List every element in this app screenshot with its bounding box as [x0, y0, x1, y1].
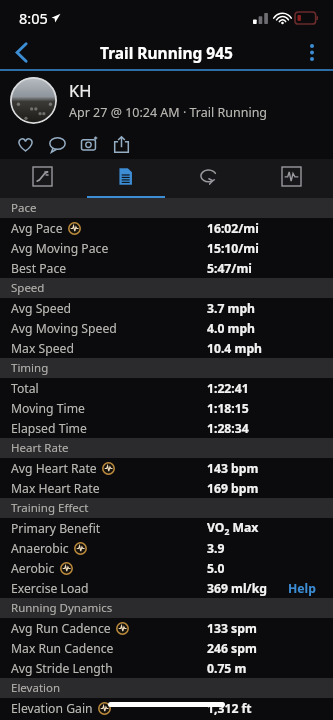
- button[interactable]: Back: [0, 35, 42, 69]
- staticText: Anaerobic: [11, 540, 69, 557]
- button[interactable]: Avg Run Cadence: [0, 618, 333, 638]
- button[interactable]: Best Pace: [0, 258, 333, 278]
- staticText: VO2 Max: [207, 519, 259, 538]
- staticText: Avg Heart Rate: [11, 460, 97, 477]
- button[interactable]: Elevation Gain: [0, 698, 333, 718]
- staticText: 5.0: [207, 560, 225, 577]
- staticText: Avg Moving Pace: [11, 240, 109, 257]
- button[interactable]: Total: [0, 378, 333, 398]
- button[interactable]: Max Run Cadence: [0, 638, 333, 658]
- staticText: 1:22:41: [207, 380, 249, 397]
- staticText: Avg Stride Length: [11, 660, 113, 677]
- staticText: Speed: [11, 280, 45, 296]
- staticText: 0.75 m: [207, 660, 247, 677]
- staticText: 5:47/mi: [207, 260, 252, 277]
- staticText: Heart Rate: [11, 440, 69, 456]
- button[interactable]: Share: [105, 129, 137, 159]
- staticText: 133 spm: [207, 620, 257, 637]
- staticText: Help: [288, 580, 316, 597]
- staticText: Pace: [11, 200, 37, 216]
- staticText: 143 bpm: [207, 460, 259, 477]
- button[interactable]: Max Speed: [0, 338, 333, 358]
- staticText: Avg Pace: [11, 220, 63, 237]
- button[interactable]: Avg Moving Pace: [0, 238, 333, 258]
- staticText: KH: [69, 79, 92, 101]
- staticText: Aerobic: [11, 560, 55, 577]
- button[interactable]: Like: [9, 129, 41, 159]
- staticText: Best Pace: [11, 260, 67, 277]
- staticText: Avg Speed: [11, 300, 72, 317]
- staticText: Elapsed Time: [11, 420, 87, 437]
- button[interactable]: Comment: [41, 129, 73, 159]
- button[interactable]: Anaerobic: [0, 538, 333, 558]
- staticText: Max Heart Rate: [11, 480, 100, 497]
- staticText: 169 bpm: [207, 480, 259, 497]
- staticText: Training Effect: [11, 500, 89, 516]
- staticText: Primary Benefit: [11, 520, 101, 537]
- button[interactable]: Avg Moving Speed: [0, 318, 333, 338]
- staticText: 15:10/mi: [207, 240, 259, 257]
- button[interactable]: Avg Speed: [0, 298, 333, 318]
- staticText: Exercise Load: [11, 580, 89, 597]
- staticText: 10.4 mph: [207, 340, 263, 357]
- button[interactable]: Help: [288, 580, 316, 597]
- button[interactable]: KH: [0, 71, 333, 129]
- button[interactable]: Max Heart Rate: [0, 478, 333, 498]
- staticText: 369 ml/kg: [207, 580, 267, 597]
- button[interactable]: Photo: [73, 129, 105, 159]
- button[interactable]: Elapsed Time: [0, 418, 333, 438]
- button[interactable]: Moving Time: [0, 398, 333, 418]
- button[interactable]: Aerobic: [0, 558, 333, 578]
- staticText: 4.0 mph: [207, 320, 256, 337]
- button[interactable]: Details: [84, 159, 167, 198]
- button[interactable]: Avg Pace: [0, 218, 333, 238]
- staticText: 16:02/mi: [207, 220, 259, 237]
- staticText: Elevation: [11, 680, 61, 696]
- staticText: Elevation Gain: [11, 700, 93, 717]
- button[interactable]: Map: [0, 159, 84, 198]
- button[interactable]: Exercise Load: [0, 578, 333, 598]
- button[interactable]: More options: [291, 35, 333, 69]
- staticText: 1:28:34: [207, 420, 249, 437]
- staticText: Running Dynamics: [11, 600, 113, 616]
- button[interactable]: Primary Benefit: [0, 518, 333, 538]
- staticText: 3.9: [207, 540, 225, 557]
- staticText: Apr 27 @ 10:24 AM · Trail Running: [69, 104, 268, 121]
- staticText: 8:05: [19, 8, 48, 28]
- staticText: Max Run Cadence: [11, 640, 114, 657]
- button[interactable]: Avg Stride Length: [0, 658, 333, 678]
- staticText: 246 spm: [207, 640, 257, 657]
- staticText: Moving Time: [11, 400, 85, 417]
- staticText: Trail Running 945: [100, 42, 233, 63]
- staticText: Avg Moving Speed: [11, 320, 117, 337]
- button[interactable]: Laps: [167, 159, 250, 198]
- button[interactable]: Avg Heart Rate: [0, 458, 333, 478]
- staticText: 3.7 mph: [207, 300, 256, 317]
- staticText: Timing: [11, 360, 49, 376]
- staticText: Max Speed: [11, 340, 74, 357]
- staticText: 1:18:15: [207, 400, 249, 417]
- staticText: Total: [11, 380, 39, 397]
- staticText: 1,312 ft: [207, 700, 252, 717]
- staticText: Avg Run Cadence: [11, 620, 111, 637]
- button[interactable]: Charts: [250, 159, 333, 198]
